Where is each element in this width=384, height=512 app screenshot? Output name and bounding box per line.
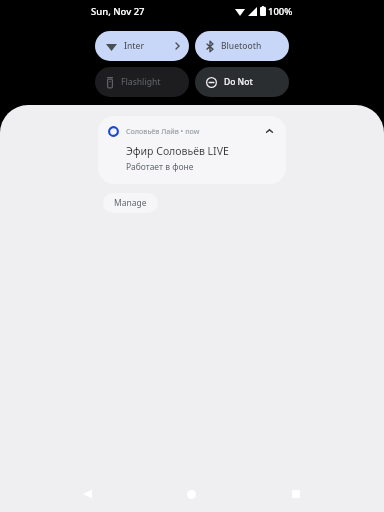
staticText: Sun, Nov 27 xyxy=(91,5,145,18)
staticText: Соловьёв Лайв • now xyxy=(126,126,262,136)
staticText: Do Not Disturb xyxy=(224,76,280,88)
button[interactable]: Home xyxy=(174,477,208,511)
staticText: Эфир Соловьёв LIVE xyxy=(126,144,229,158)
staticText: 100% xyxy=(268,5,293,18)
button[interactable]: Internet xyxy=(95,31,189,61)
button[interactable]: Do Not Disturb xyxy=(195,67,289,97)
button[interactable]: Collapse notification xyxy=(262,124,276,138)
staticText: Bluetooth xyxy=(221,40,262,52)
staticText: Manage xyxy=(114,197,147,209)
staticText: Работает в фоне xyxy=(126,161,194,173)
button[interactable]: Flashlight xyxy=(95,67,189,97)
button[interactable]: Bluetooth xyxy=(195,31,289,61)
staticText: Flashlight xyxy=(121,76,161,88)
button[interactable]: Соловьёв Лайв • now xyxy=(98,116,286,184)
button[interactable]: Manage xyxy=(103,193,158,213)
staticText: Internet xyxy=(124,40,149,52)
button[interactable]: Recent apps xyxy=(279,477,313,511)
